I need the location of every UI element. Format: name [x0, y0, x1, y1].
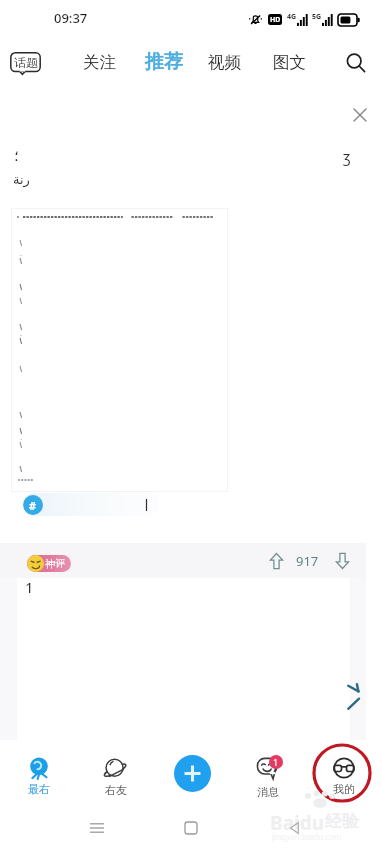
staticText: 关注: [83, 52, 116, 73]
staticText: 1: [25, 577, 34, 597]
button[interactable]: Downvote: [332, 551, 352, 571]
staticText: #: [29, 498, 37, 513]
button[interactable]: Recent apps: [82, 813, 112, 843]
button[interactable]: 右友: [77, 745, 154, 805]
button[interactable]: Back: [280, 813, 310, 843]
staticText: 1: [273, 756, 279, 768]
staticText: 经验: [325, 811, 359, 832]
staticText: 推荐: [145, 50, 183, 74]
button[interactable]: 视频: [208, 52, 241, 73]
button[interactable]: Upvote: [266, 551, 286, 571]
button[interactable]: 我的: [306, 745, 382, 805]
staticText: 我的: [333, 782, 355, 796]
staticText: 09:37: [54, 9, 88, 27]
staticText: 图文: [273, 52, 306, 73]
staticText: jingyan.baidu.com: [272, 831, 342, 842]
button[interactable]: 话题: [10, 52, 41, 75]
staticText: 神评: [45, 557, 65, 570]
button[interactable]: 图文: [273, 52, 306, 73]
staticText: رنة: [13, 172, 30, 187]
button[interactable]: 最右: [0, 745, 77, 805]
staticText: ʒ: [343, 146, 351, 166]
staticText: 视频: [208, 52, 241, 73]
button[interactable]: Search: [338, 45, 374, 81]
staticText: 5G: [312, 12, 322, 22]
button[interactable]: #: [23, 493, 159, 516]
button[interactable]: 推荐: [145, 50, 183, 74]
button[interactable]: New post: [174, 755, 211, 792]
staticText: 话题: [14, 55, 38, 70]
button[interactable]: 1: [230, 745, 306, 805]
staticText: 最右: [28, 782, 50, 796]
button[interactable]: Home: [176, 813, 206, 843]
staticText: 右友: [105, 783, 127, 797]
button[interactable]: Close: [348, 103, 372, 127]
staticText: Baidu: [270, 810, 325, 836]
staticText: 917: [296, 552, 319, 570]
staticText: 消息: [257, 785, 279, 799]
button[interactable]: 神评: [27, 555, 71, 572]
button[interactable]: [11, 208, 228, 492]
button[interactable]: 关注: [83, 52, 116, 73]
staticText: 4G: [287, 12, 297, 22]
staticText: HD: [270, 15, 281, 25]
staticText: ؛: [14, 147, 19, 164]
